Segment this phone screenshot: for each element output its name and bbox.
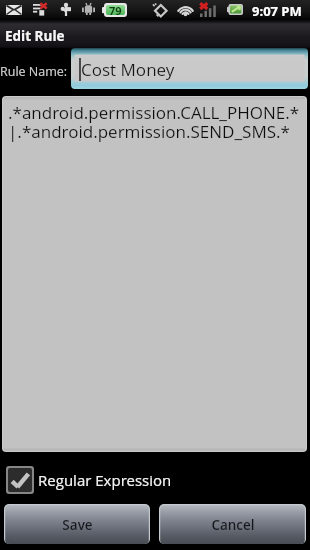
staticText: Cost Money [81,58,175,81]
staticText: Edit Rule [5,27,65,45]
button[interactable]: .*android.permission.CALL_PHONE.* |.*and… [2,96,307,452]
staticText: Regular Expression [38,470,172,490]
staticText: .*android.permission.CALL_PHONE.* |.*and… [8,101,300,143]
other: Wi-Fi [177,4,194,17]
other: Vibrate mode [152,3,168,17]
other: Unread mail [6,4,22,16]
staticText: Rule Name: [0,63,68,80]
other: No SIM card [33,3,47,16]
button[interactable]: Save [4,504,150,544]
button[interactable]: Cost Money [71,48,308,89]
other: Battery 79 percent [102,3,127,17]
other: No signal [199,3,218,17]
other: Android [82,3,95,15]
staticText: Save [62,516,93,534]
staticText: 9:07 PM [252,2,302,20]
button[interactable]: Cancel [159,504,306,544]
other: Battery [227,4,243,15]
staticText: Cancel [211,516,255,534]
other: USB connected [61,3,71,16]
button[interactable]: Regular Expression [6,466,172,494]
staticText: 79 [109,3,122,17]
